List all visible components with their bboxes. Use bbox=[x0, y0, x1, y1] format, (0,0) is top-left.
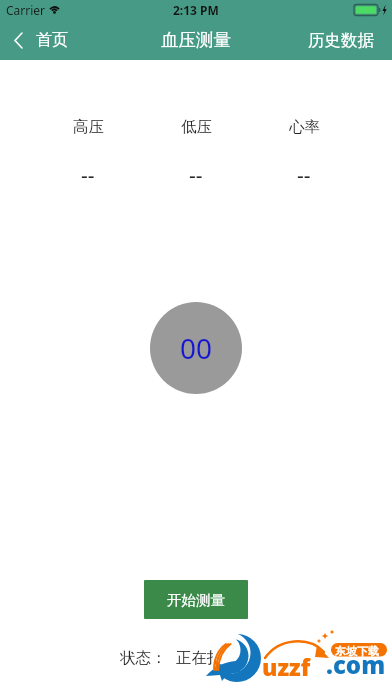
staticText: -- bbox=[189, 161, 203, 190]
staticText: 高压 bbox=[73, 117, 104, 137]
staticText: 状态： bbox=[120, 648, 167, 668]
staticText: 00 bbox=[180, 329, 213, 367]
staticText: 正在扫描设备 bbox=[176, 648, 269, 668]
button[interactable]: 00 bbox=[150, 302, 242, 394]
staticText: 首页 bbox=[36, 30, 68, 50]
button[interactable]: 首页 bbox=[0, 24, 80, 56]
staticText: Carrier bbox=[6, 2, 46, 18]
staticText: 2:13 PM bbox=[173, 2, 219, 18]
button[interactable]: 开始测量 bbox=[144, 580, 248, 619]
staticText: uzzf bbox=[262, 651, 311, 682]
button[interactable]: 历史数据 bbox=[296, 24, 392, 57]
staticText: -- bbox=[297, 161, 311, 190]
staticText: -- bbox=[81, 161, 95, 190]
staticText: 低压 bbox=[181, 117, 212, 137]
staticText: 东坡下载 bbox=[335, 644, 379, 658]
staticText: .com bbox=[326, 648, 386, 681]
staticText: 血压测量 bbox=[161, 29, 231, 51]
staticText: 心率 bbox=[289, 117, 320, 137]
staticText: 开始测量 bbox=[167, 591, 226, 609]
